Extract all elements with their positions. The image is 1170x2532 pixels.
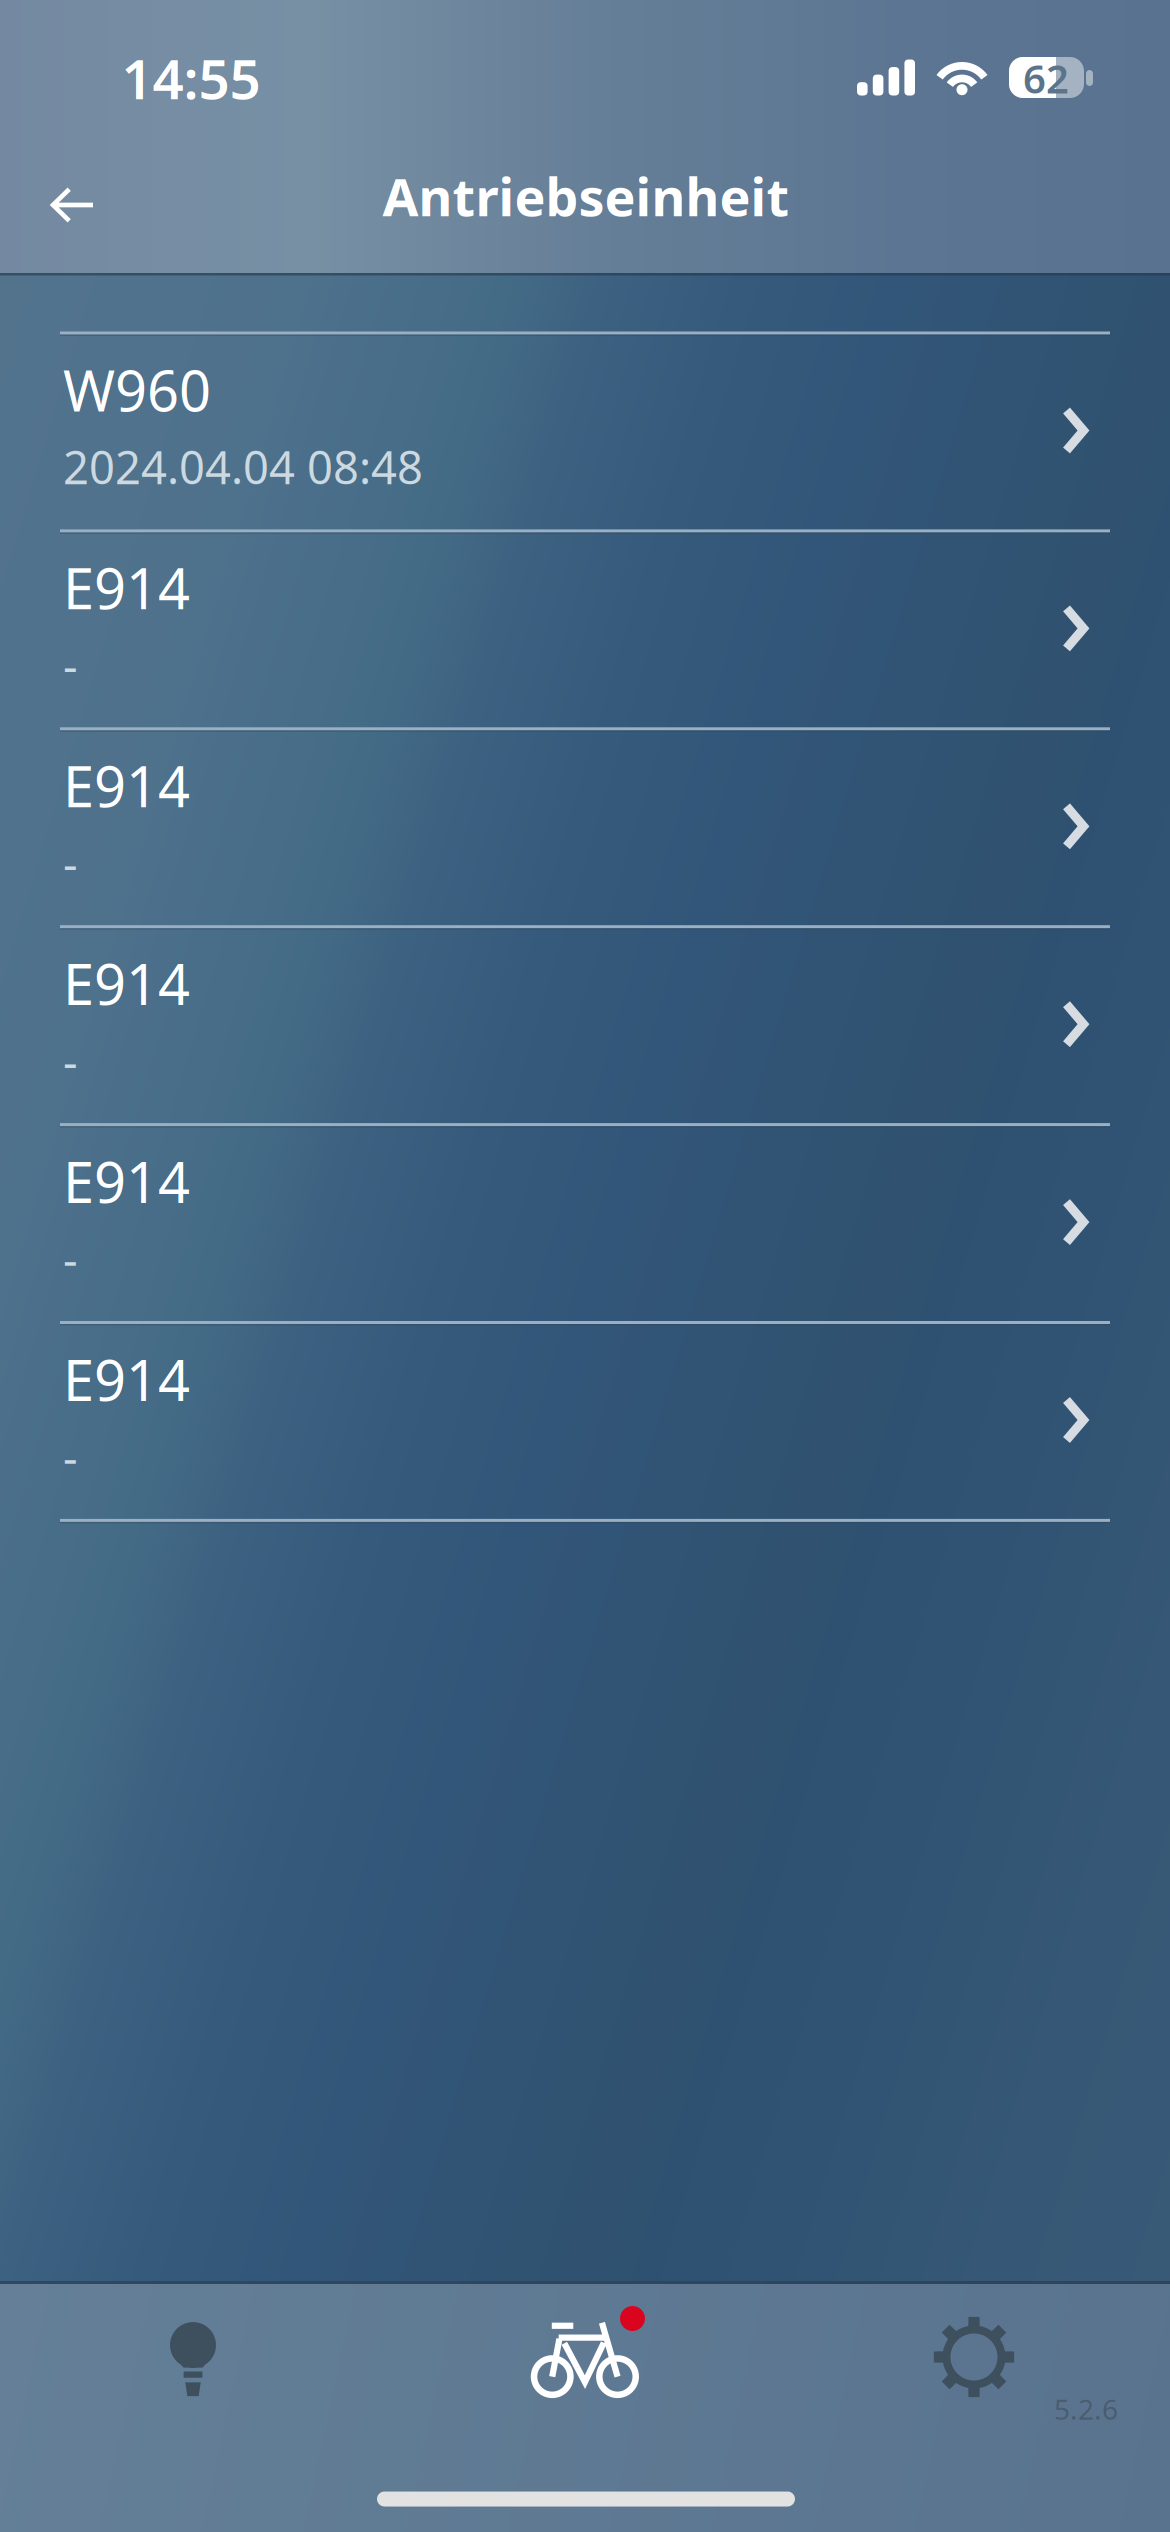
staticText: E914 [63, 1342, 190, 1416]
staticText: E914 [63, 748, 190, 823]
staticText: E914 [63, 550, 190, 625]
staticText: Antriebseinheit [382, 161, 789, 231]
button[interactable]: Settings [889, 2292, 1059, 2422]
button[interactable]: Bike [505, 2306, 665, 2436]
staticText: 2024.04.04 08:48 [63, 436, 423, 497]
button[interactable]: Back [13, 145, 133, 265]
button[interactable]: W960 [0, 331, 1170, 529]
button[interactable]: E914 [0, 529, 1170, 727]
button[interactable]: E914 [0, 1321, 1170, 1519]
button[interactable]: E914 [0, 727, 1170, 925]
staticText: W960 [63, 352, 211, 427]
staticText: - [63, 1228, 78, 1288]
staticText: E914 [63, 946, 190, 1021]
staticText: E914 [63, 1144, 190, 1218]
button[interactable]: Tips [108, 2295, 278, 2425]
staticText: - [63, 634, 78, 695]
staticText: - [63, 832, 78, 892]
button[interactable]: E914 [0, 1123, 1170, 1321]
staticText: - [63, 1030, 78, 1090]
staticText: - [63, 1426, 78, 1486]
button[interactable]: E914 [0, 925, 1170, 1123]
staticText: 62 [1023, 51, 1069, 104]
staticText: 5.2.6 [1054, 2390, 1118, 2428]
staticText: 14:55 [121, 42, 260, 114]
